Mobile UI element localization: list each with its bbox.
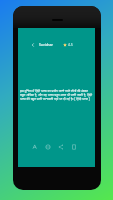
button[interactable]: Share	[55, 141, 66, 152]
button[interactable]: Translate	[42, 141, 53, 152]
staticText: Suvichar	[39, 42, 53, 47]
staticText: 4.5	[68, 42, 73, 47]
button[interactable]: Text size	[29, 141, 40, 152]
staticText: इस दुनिया में हिंदी भाषा का प्रयोग करने …	[20, 89, 93, 101]
button[interactable]: Back	[29, 41, 37, 49]
button[interactable]: Bookmark	[68, 141, 79, 152]
button[interactable]: Rating	[63, 42, 73, 47]
